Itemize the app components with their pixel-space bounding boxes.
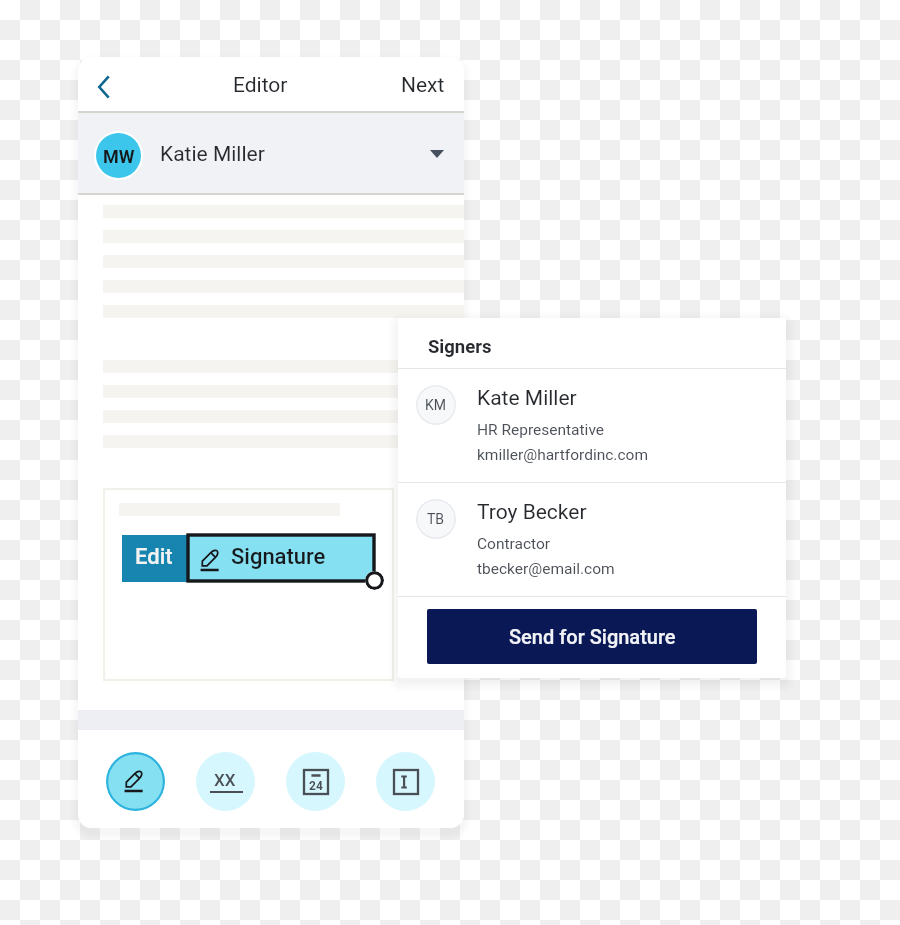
staticText: Kate Miller [477,386,577,411]
staticText: HR Representative [477,421,605,439]
staticText: TB [427,511,445,527]
button[interactable]: KM [398,369,786,482]
staticText: Send for Signature [509,625,676,648]
staticText: Signature [231,544,326,570]
staticText: Contractor [477,535,551,553]
staticText: Signers [428,336,492,358]
button[interactable]: TB [398,483,786,596]
staticText: Troy Becker [477,500,587,525]
button[interactable]: Initials tool [196,752,255,811]
staticText: tbecker@email.com [477,560,615,578]
button[interactable]: Back [81,63,125,107]
staticText: Editor [233,73,288,98]
button[interactable]: Edit [122,535,189,582]
button[interactable]: MW [78,113,464,195]
staticText: 24 [309,779,323,793]
staticText: Katie Miller [160,142,265,167]
staticText: Next [401,73,445,98]
staticText: kmiller@hartfordinc.com [477,446,648,464]
staticText: MW [103,146,135,167]
button[interactable]: Signature tool [106,752,165,811]
button[interactable]: Text box tool [376,752,435,811]
button[interactable]: Send for Signature [427,609,757,664]
button[interactable]: Signature [188,535,374,581]
button[interactable]: Date tool [286,752,345,811]
staticText: Edit [135,544,173,570]
button[interactable]: Next [392,65,454,106]
staticText: KM [425,397,447,413]
staticText: XX [214,770,236,790]
